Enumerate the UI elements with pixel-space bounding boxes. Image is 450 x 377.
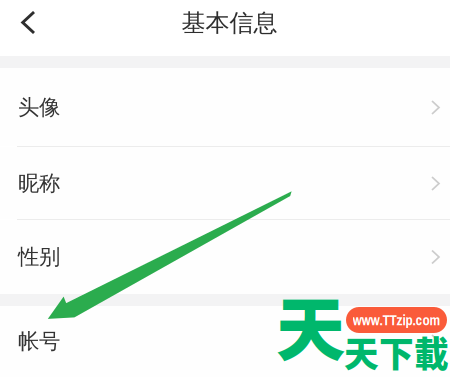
- button[interactable]: 性别: [0, 220, 450, 294]
- staticText: 帐号: [18, 328, 60, 355]
- button[interactable]: Back: [0, 0, 54, 45]
- staticText: 性别: [18, 244, 60, 270]
- staticText: 昵称: [18, 170, 60, 197]
- staticText: 天下載: [344, 327, 449, 377]
- staticText: 天: [276, 275, 345, 375]
- button[interactable]: 帐号: [0, 306, 450, 377]
- button[interactable]: 头像: [0, 68, 450, 147]
- button[interactable]: 昵称: [0, 147, 450, 220]
- staticText: 头像: [18, 94, 60, 121]
- staticText: www.TTzip.com: [352, 310, 440, 330]
- staticText: 基本信息: [181, 8, 277, 38]
